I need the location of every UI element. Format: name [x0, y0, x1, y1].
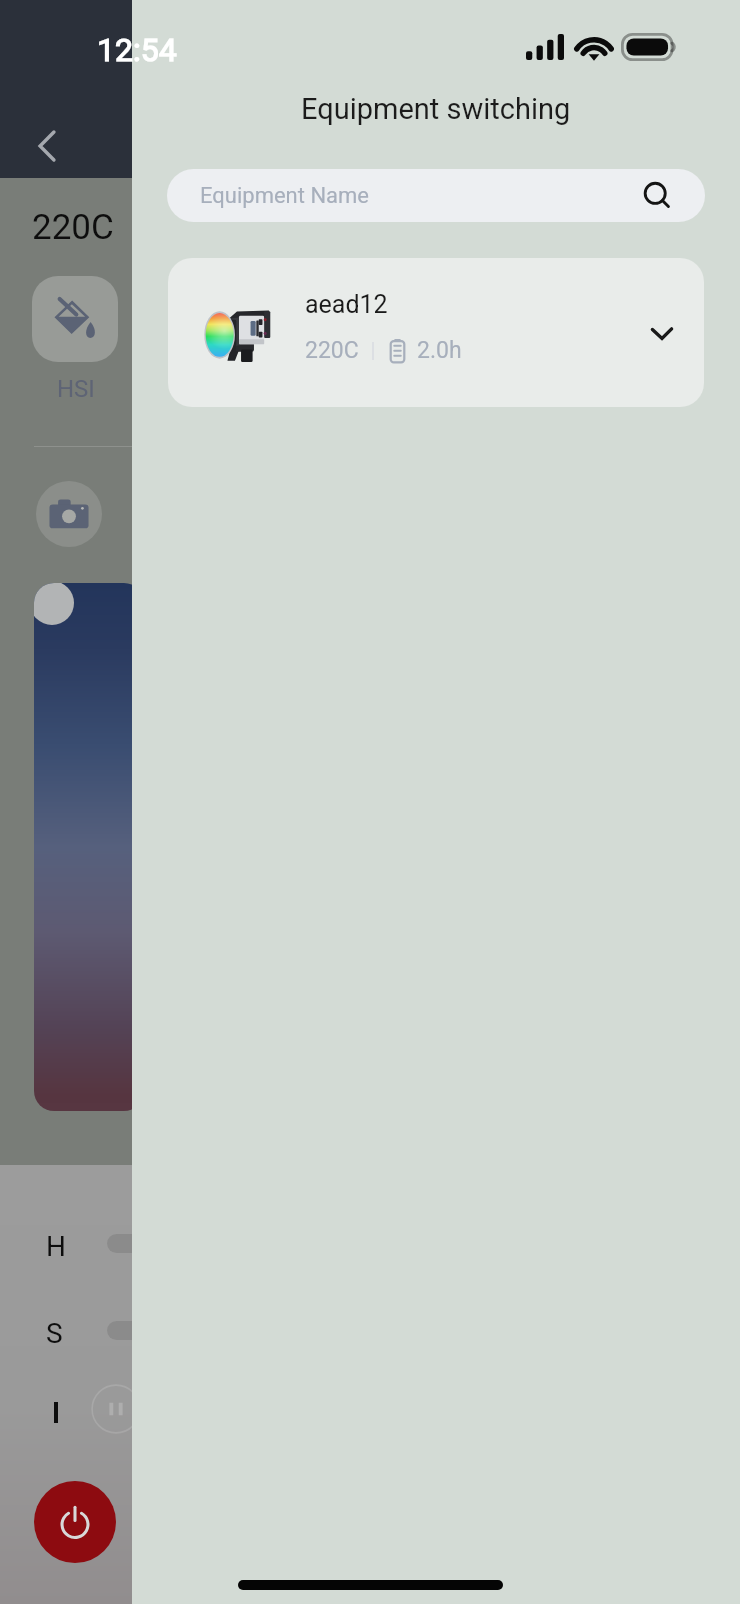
staticText: 220C: [305, 337, 359, 364]
button[interactable]: Equipment Name: [167, 169, 705, 222]
staticText: H: [46, 1230, 66, 1263]
staticText: HSI: [57, 375, 95, 403]
button[interactable]: Camera: [36, 481, 102, 547]
staticText: Equipment switching: [301, 92, 571, 126]
staticText: 2.0h: [417, 337, 462, 364]
button[interactable]: Expand: [640, 311, 684, 355]
staticText: 220C: [32, 207, 114, 248]
staticText: Equipment Name: [200, 183, 370, 209]
staticText: S: [46, 1317, 63, 1350]
staticText: 12:54: [97, 31, 177, 69]
button[interactable]: [32, 276, 118, 362]
button[interactable]: Power: [34, 1481, 116, 1563]
button[interactable]: Back: [30, 128, 66, 164]
button[interactable]: Search: [642, 181, 672, 211]
staticText: aead12: [305, 290, 388, 319]
button[interactable]: aead12: [168, 258, 704, 407]
